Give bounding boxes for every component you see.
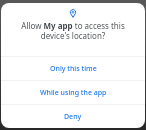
- button[interactable]: While using the app: [1, 81, 145, 104]
- staticText: While using the app: [40, 88, 107, 98]
- staticText: Deny: [64, 112, 82, 122]
- button[interactable]: Only this time: [1, 57, 145, 80]
- staticText: Allow My app to access this device's loc…: [1, 20, 145, 41]
- staticText: Only this time: [50, 64, 97, 74]
- button[interactable]: Deny: [1, 105, 145, 128]
